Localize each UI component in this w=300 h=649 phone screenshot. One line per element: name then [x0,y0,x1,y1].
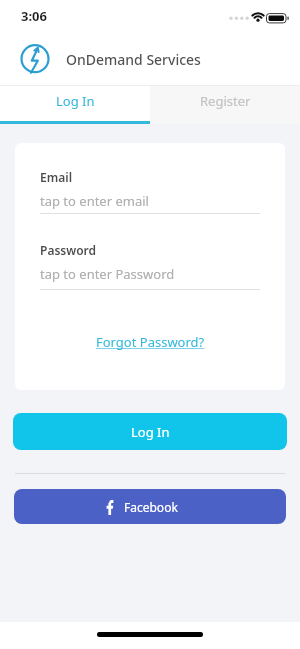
staticText: Password [40,242,97,258]
button[interactable]: tap to enter email [40,192,149,210]
staticText: Register [200,92,251,110]
button[interactable]: Forgot Password? [96,333,205,351]
staticText: Facebook [124,499,178,515]
button[interactable]: Register [150,86,300,124]
staticText: OnDemand Services [66,50,201,69]
button[interactable]: Log In [0,86,150,124]
staticText: Email [40,169,73,185]
staticText: 3:06 [21,7,47,25]
staticText: Log In [131,423,170,441]
button[interactable]: Log In [13,413,287,450]
staticText: Log In [56,92,95,110]
button[interactable]: Facebook [14,489,286,524]
button[interactable]: tap to enter Password [40,265,175,283]
